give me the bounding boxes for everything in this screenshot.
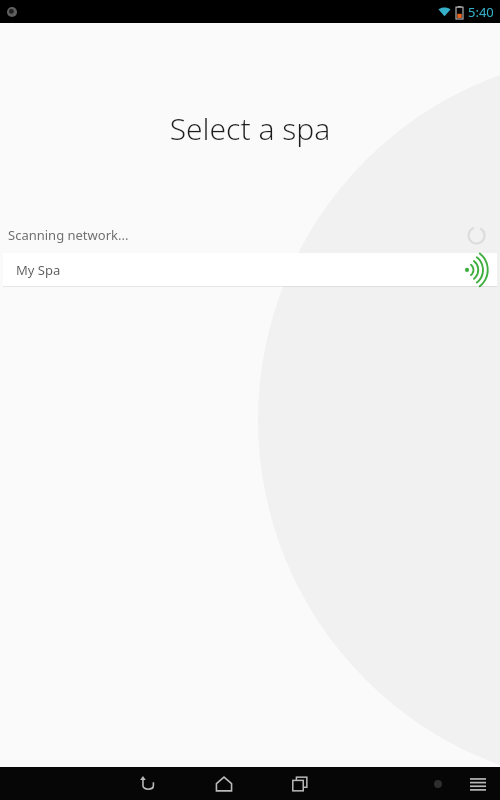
button[interactable]: Menu	[456, 767, 500, 800]
other: Scanning	[467, 226, 486, 245]
button[interactable]: Back	[110, 767, 186, 800]
button[interactable]: My Spa	[3, 253, 497, 286]
staticText: My Spa	[16, 261, 61, 279]
staticText: Select a spa	[0, 108, 500, 149]
staticText: 5:40	[468, 3, 494, 21]
button[interactable]: Recent apps	[262, 767, 338, 800]
staticText: Scanning network...	[8, 226, 129, 244]
button[interactable]: Notifications	[420, 767, 456, 800]
button[interactable]: Home	[186, 767, 262, 800]
